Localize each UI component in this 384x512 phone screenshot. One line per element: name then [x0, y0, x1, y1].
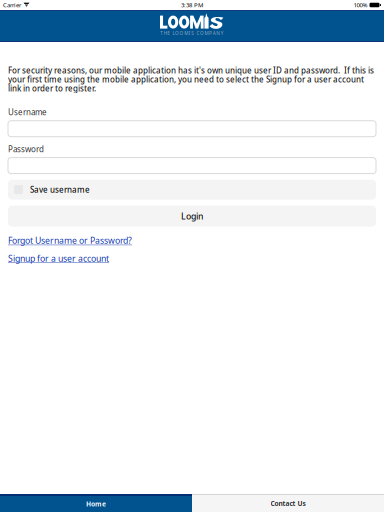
- staticText: For security reasons, our mobile applica…: [8, 66, 374, 93]
- staticText: 100%: [353, 1, 367, 9]
- staticText: Carrier: [3, 1, 21, 9]
- button[interactable]: Home: [0, 494, 192, 512]
- staticText: Save username: [30, 184, 90, 195]
- staticText: Forgot Username or Password?: [8, 235, 132, 246]
- button[interactable]: Login: [8, 206, 376, 227]
- staticText: Password: [8, 144, 44, 155]
- staticText: 3:38 PM: [181, 1, 203, 9]
- button[interactable]: Forgot Username or Password?: [8, 235, 132, 246]
- button[interactable]: Contact Us: [192, 494, 384, 512]
- staticText: Signup for a user account: [8, 252, 109, 264]
- button[interactable]: Signup for a user account: [8, 252, 109, 264]
- staticText: Home: [86, 499, 106, 509]
- button[interactable]: Save username: [8, 180, 376, 200]
- staticText: Login: [181, 210, 203, 222]
- staticText: Username: [8, 107, 47, 118]
- staticText: Contact Us: [270, 499, 305, 508]
- staticText: THE LOOMIS COMPANY: [160, 30, 224, 36]
